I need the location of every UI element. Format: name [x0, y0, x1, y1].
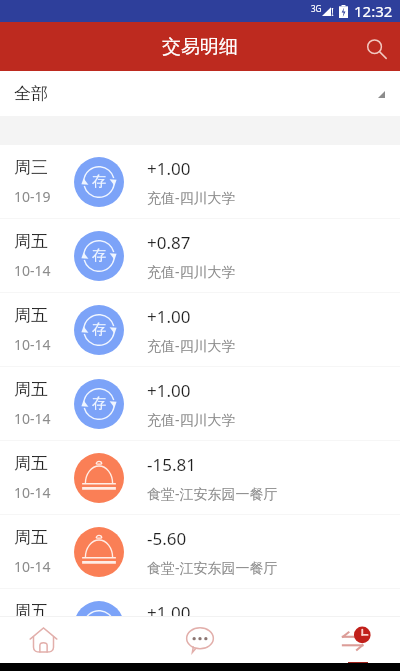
staticText: 存: [92, 247, 106, 265]
staticText: 3G: [311, 3, 322, 14]
staticText: 存: [92, 173, 106, 191]
button[interactable]: Home: [0, 617, 87, 663]
button[interactable]: 周五: [0, 589, 400, 616]
button[interactable]: 周五: [0, 515, 400, 589]
staticText: -5.60: [147, 527, 187, 550]
staticText: 交易明细: [162, 35, 238, 59]
button[interactable]: 周五: [0, 219, 400, 293]
staticText: 10-14: [14, 557, 51, 576]
staticText: 存: [92, 395, 106, 413]
button[interactable]: 周五: [0, 293, 400, 367]
button[interactable]: 周五: [0, 367, 400, 441]
button[interactable]: Messages: [87, 617, 313, 663]
staticText: 周五: [14, 231, 48, 252]
button[interactable]: Search: [352, 23, 400, 71]
staticText: !: [331, 4, 334, 19]
staticText: 全部: [14, 83, 48, 104]
staticText: +1.00: [147, 601, 191, 616]
staticText: 周五: [14, 527, 48, 548]
staticText: 周五: [14, 601, 48, 616]
staticText: 10-14: [14, 335, 51, 354]
staticText: +1.00: [147, 379, 191, 402]
button[interactable]: 周五: [0, 441, 400, 515]
staticText: 10-14: [14, 409, 51, 428]
button[interactable]: 全部: [0, 71, 400, 116]
staticText: 10-14: [14, 483, 51, 502]
staticText: +0.87: [147, 231, 191, 254]
staticText: 周五: [14, 305, 48, 326]
staticText: 存: [92, 321, 106, 339]
staticText: +1.00: [147, 305, 191, 328]
staticText: 周三: [14, 157, 48, 178]
button[interactable]: Transactions: [313, 617, 400, 663]
staticText: 周五: [14, 379, 48, 400]
button[interactable]: 周三: [0, 145, 400, 219]
staticText: 12:32: [354, 1, 393, 21]
staticText: +1.00: [147, 157, 191, 180]
staticText: 10-14: [14, 261, 51, 280]
staticText: 充值-四川大学: [147, 336, 236, 355]
staticText: -15.81: [147, 453, 196, 476]
staticText: 10-19: [14, 187, 51, 206]
staticText: 充值-四川大学: [147, 188, 236, 207]
staticText: 食堂-江安东园一餐厅: [147, 484, 278, 503]
staticText: 充值-四川大学: [147, 262, 236, 281]
staticText: 食堂-江安东园一餐厅: [147, 558, 278, 577]
staticText: 充值-四川大学: [147, 410, 236, 429]
staticText: 周五: [14, 453, 48, 474]
